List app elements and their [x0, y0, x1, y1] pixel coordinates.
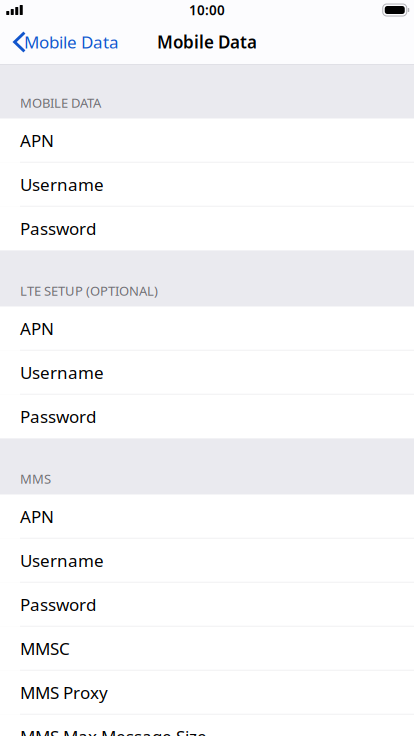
staticText: Username — [20, 173, 104, 196]
button[interactable]: MMS Proxy — [0, 670, 414, 714]
staticText: MMS Proxy — [20, 681, 108, 704]
staticText: 10:00 — [189, 1, 225, 19]
button[interactable]: APN — [0, 306, 414, 350]
staticText: Username — [20, 549, 104, 572]
button[interactable]: Username — [0, 538, 414, 582]
button[interactable]: MMSC — [0, 626, 414, 670]
staticText: Password — [20, 593, 96, 616]
staticText: MOBILE DATA — [20, 94, 101, 111]
staticText: MMS — [20, 470, 51, 487]
staticText: MMSC — [20, 637, 70, 660]
staticText: APN — [20, 505, 54, 528]
staticText: Mobile Data — [157, 30, 257, 54]
staticText: Username — [20, 361, 104, 384]
staticText: MMS Max Message Size — [20, 725, 207, 736]
button[interactable]: Username — [0, 350, 414, 394]
staticText: APN — [20, 129, 54, 152]
staticText: Mobile Data — [24, 30, 119, 54]
staticText: LTE SETUP (OPTIONAL) — [20, 282, 158, 299]
button[interactable]: Password — [0, 394, 414, 438]
button[interactable]: Password — [0, 206, 414, 250]
staticText: Password — [20, 405, 96, 428]
button[interactable]: APN — [0, 118, 414, 162]
button[interactable]: Mobile Data — [0, 22, 127, 62]
staticText: APN — [20, 317, 54, 340]
button[interactable]: APN — [0, 494, 414, 538]
button[interactable]: Password — [0, 582, 414, 626]
staticText: Password — [20, 217, 96, 240]
button[interactable]: Username — [0, 162, 414, 206]
button[interactable]: MMS Max Message Size — [0, 714, 414, 736]
